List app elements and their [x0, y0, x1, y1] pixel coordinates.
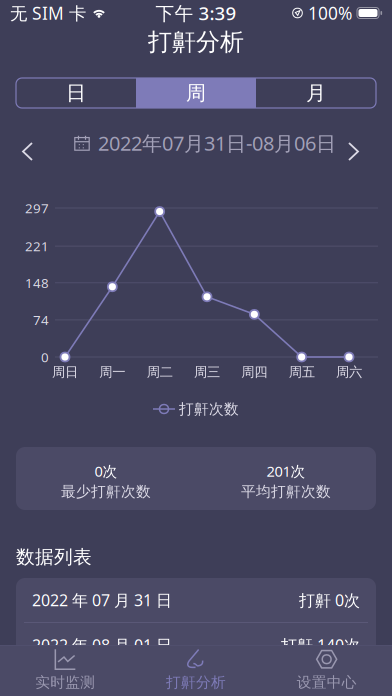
button[interactable]: 实时监测: [0, 643, 131, 696]
button[interactable]: 设置中心: [261, 643, 392, 696]
staticText: 297: [25, 199, 49, 217]
staticText: 月: [306, 81, 326, 105]
staticText: 201次: [266, 461, 305, 481]
staticText: 最少打鼾次数: [61, 483, 151, 501]
button[interactable]: 日: [16, 78, 136, 108]
staticText: 实时监测: [35, 673, 95, 691]
button[interactable]: 月: [256, 78, 376, 108]
staticText: 下午 3:39: [155, 1, 236, 25]
staticText: 数据列表: [16, 545, 92, 568]
staticText: 平均打鼾次数: [241, 483, 331, 501]
staticText: 设置中心: [297, 673, 357, 691]
staticText: 100%: [308, 1, 352, 24]
button[interactable]: 2022 年 07 月 31 日: [16, 578, 376, 622]
staticText: 74: [33, 311, 49, 329]
staticText: 周: [186, 81, 206, 105]
staticText: 周一: [99, 364, 125, 380]
staticText: 周六: [336, 364, 362, 380]
staticText: 打鼾次数: [179, 400, 239, 418]
staticText: 日: [66, 81, 86, 105]
staticText: 周二: [147, 364, 173, 380]
button[interactable]: 2022 年 08 月 01 日: [16, 623, 376, 667]
staticText: 打鼾 140次: [281, 634, 360, 656]
staticText: 周日: [52, 364, 78, 380]
staticText: 148: [25, 274, 49, 292]
staticText: 2022年07月31日-08月06日: [98, 130, 336, 156]
staticText: 无 SIM 卡: [10, 1, 86, 24]
staticText: 0次: [94, 461, 117, 481]
button[interactable]: 上一周: [8, 130, 47, 173]
button[interactable]: 下一周: [334, 130, 373, 173]
staticText: 2022 年 07 月 31 日: [32, 589, 172, 611]
staticText: 打鼾分析: [166, 673, 226, 691]
button[interactable]: 打鼾分析: [131, 643, 261, 696]
staticText: 周三: [194, 364, 220, 380]
staticText: 0: [41, 348, 49, 366]
staticText: 221: [25, 237, 49, 255]
staticText: 2022 年 08 月 01 日: [32, 634, 172, 656]
staticText: 打鼾分析: [148, 27, 244, 57]
staticText: 周四: [241, 364, 267, 380]
staticText: 打鼾 0次: [299, 589, 360, 611]
button[interactable]: 周: [136, 78, 256, 108]
staticText: 周五: [289, 364, 315, 380]
